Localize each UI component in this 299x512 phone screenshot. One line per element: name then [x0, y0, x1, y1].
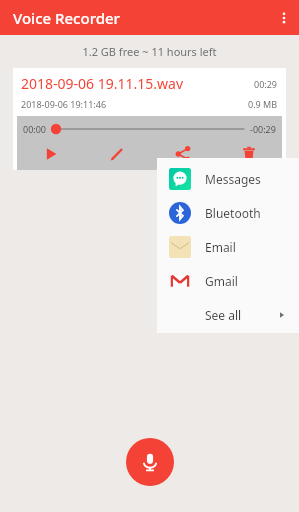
- staticText: 0.9 MB: [248, 98, 278, 110]
- staticText: See all: [205, 307, 277, 323]
- staticText: 1.2 GB free ~ 11 hours left: [0, 44, 299, 59]
- staticText: 2018-09-06 19.11.15.wav: [21, 74, 254, 93]
- staticText: 2018-09-06 19:11:46: [21, 98, 248, 110]
- button[interactable]: Share: [150, 138, 216, 170]
- button[interactable]: More options: [269, 0, 299, 35]
- staticText: -00:29: [250, 123, 276, 135]
- staticText: Messages: [205, 171, 261, 187]
- button[interactable]: Play: [17, 138, 84, 170]
- staticText: Gmail: [205, 273, 238, 289]
- button[interactable]: Edit: [84, 138, 150, 170]
- button[interactable]: See all: [157, 298, 299, 332]
- staticText: 00:00: [23, 123, 47, 135]
- staticText: Email: [205, 239, 236, 255]
- button[interactable]: Messages: [157, 162, 299, 196]
- staticText: Bluetooth: [205, 205, 261, 221]
- button[interactable]: [51, 120, 246, 138]
- staticText: 00:29: [254, 78, 278, 90]
- staticText: Voice Recorder: [13, 8, 120, 28]
- button[interactable]: Gmail: [157, 264, 299, 298]
- button[interactable]: Email: [157, 230, 299, 264]
- button[interactable]: Delete: [216, 138, 282, 170]
- button[interactable]: Record: [126, 438, 174, 486]
- button[interactable]: 2018-09-06 19.11.15.wav: [13, 68, 286, 170]
- button[interactable]: Bluetooth: [157, 196, 299, 230]
